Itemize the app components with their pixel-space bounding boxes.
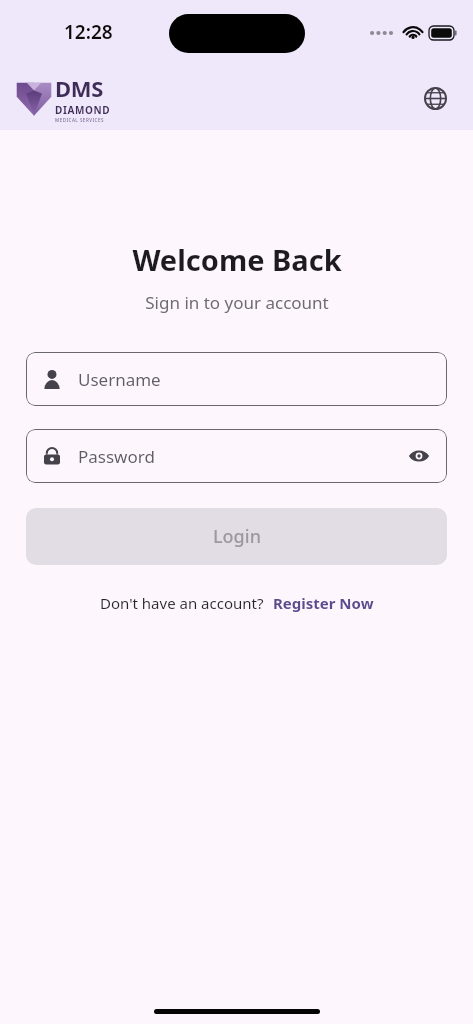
staticText: 12:28 — [64, 19, 113, 45]
button[interactable]: Change language — [415, 78, 455, 118]
button[interactable]: Login — [26, 508, 447, 565]
button[interactable]: Username — [26, 352, 447, 406]
staticText: Login — [213, 524, 261, 549]
staticText: MEDICAL SERVICES — [55, 117, 104, 123]
staticText: DIAMOND — [55, 103, 111, 117]
button[interactable]: Register Now — [273, 591, 374, 615]
button[interactable]: Show password — [403, 440, 435, 472]
staticText: Sign in to your account — [145, 291, 329, 314]
staticText: Register Now — [273, 593, 374, 613]
staticText: Password — [78, 445, 155, 468]
button[interactable]: DMS — [16, 73, 111, 123]
staticText: DMS — [55, 73, 104, 103]
staticText: Username — [78, 368, 161, 391]
staticText: Welcome Back — [132, 240, 342, 279]
staticText: Don't have an account? — [100, 593, 264, 613]
button[interactable]: Password — [26, 429, 447, 483]
